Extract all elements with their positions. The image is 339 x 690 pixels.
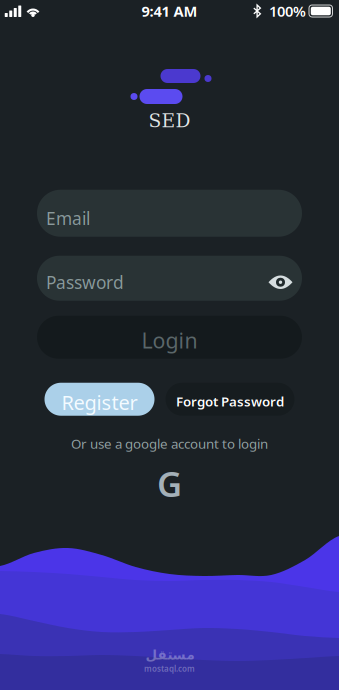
button[interactable]: Login — [37, 316, 302, 359]
staticText: SED — [148, 110, 190, 132]
staticText: mostaql.com — [144, 663, 195, 674]
button[interactable]: Register — [44, 383, 154, 416]
staticText: Login — [141, 326, 197, 354]
button[interactable]: Forgot Password — [165, 383, 294, 416]
staticText: مستقل — [145, 647, 194, 662]
staticText: 9:41 AM — [141, 1, 197, 21]
staticText: G — [157, 460, 182, 506]
staticText: 100% — [269, 1, 306, 21]
button[interactable]: Sign in with Google — [147, 466, 191, 500]
staticText: Password — [46, 271, 124, 294]
staticText: Forgot Password — [176, 392, 284, 410]
staticText: Register — [61, 389, 137, 415]
staticText: Or use a google account to login — [71, 435, 268, 452]
staticText: Email — [46, 207, 90, 230]
